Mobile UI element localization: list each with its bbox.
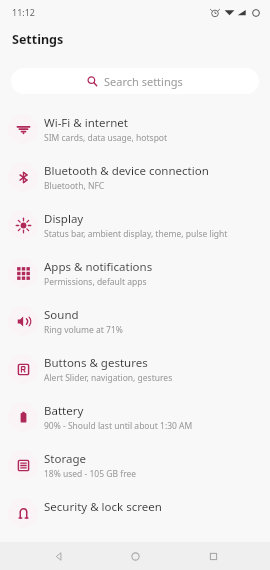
button[interactable]: Search settings xyxy=(11,68,259,94)
staticText: Ring volume at 71% xyxy=(44,324,123,336)
staticText: Settings xyxy=(12,31,64,48)
staticText: Status bar, ambient display, theme, puls… xyxy=(44,228,228,240)
staticText: Wi-Fi & internet xyxy=(44,115,128,131)
button[interactable]: Buttons & gestures xyxy=(0,345,270,393)
button[interactable]: Bluetooth & device connection xyxy=(0,153,270,201)
staticText: SIM cards, data usage, hotspot xyxy=(44,132,168,144)
staticText: 90% - Should last until about 1:30 AM xyxy=(44,420,193,432)
staticText: 18% used - 105 GB free xyxy=(44,468,137,480)
staticText: Buttons & gestures xyxy=(44,355,148,371)
staticText: Apps & notifications xyxy=(44,259,153,275)
staticText: Sound xyxy=(44,307,79,323)
staticText: Security & lock screen xyxy=(44,499,162,515)
staticText: Battery xyxy=(44,403,84,419)
button[interactable]: Back xyxy=(38,542,78,570)
staticText: Alert Slider, navigation, gestures xyxy=(44,372,173,384)
button[interactable]: Display xyxy=(0,201,270,249)
staticText: Permissions, default apps xyxy=(44,276,147,288)
staticText: Display xyxy=(44,211,84,227)
button[interactable]: Wi-Fi & internet xyxy=(0,105,270,153)
button[interactable]: Sound xyxy=(0,297,270,345)
button[interactable]: Security & lock screen xyxy=(0,489,270,537)
staticText: 11:12 xyxy=(12,6,36,18)
staticText: Storage xyxy=(44,451,86,467)
staticText: Search settings xyxy=(104,74,183,89)
button[interactable]: Storage xyxy=(0,441,270,489)
button[interactable]: Apps & notifications xyxy=(0,249,270,297)
button[interactable]: Recent apps xyxy=(193,542,233,570)
button[interactable]: Battery xyxy=(0,393,270,441)
button[interactable]: Home xyxy=(115,542,155,570)
staticText: Bluetooth & device connection xyxy=(44,163,209,179)
staticText: Bluetooth, NFC xyxy=(44,180,105,192)
